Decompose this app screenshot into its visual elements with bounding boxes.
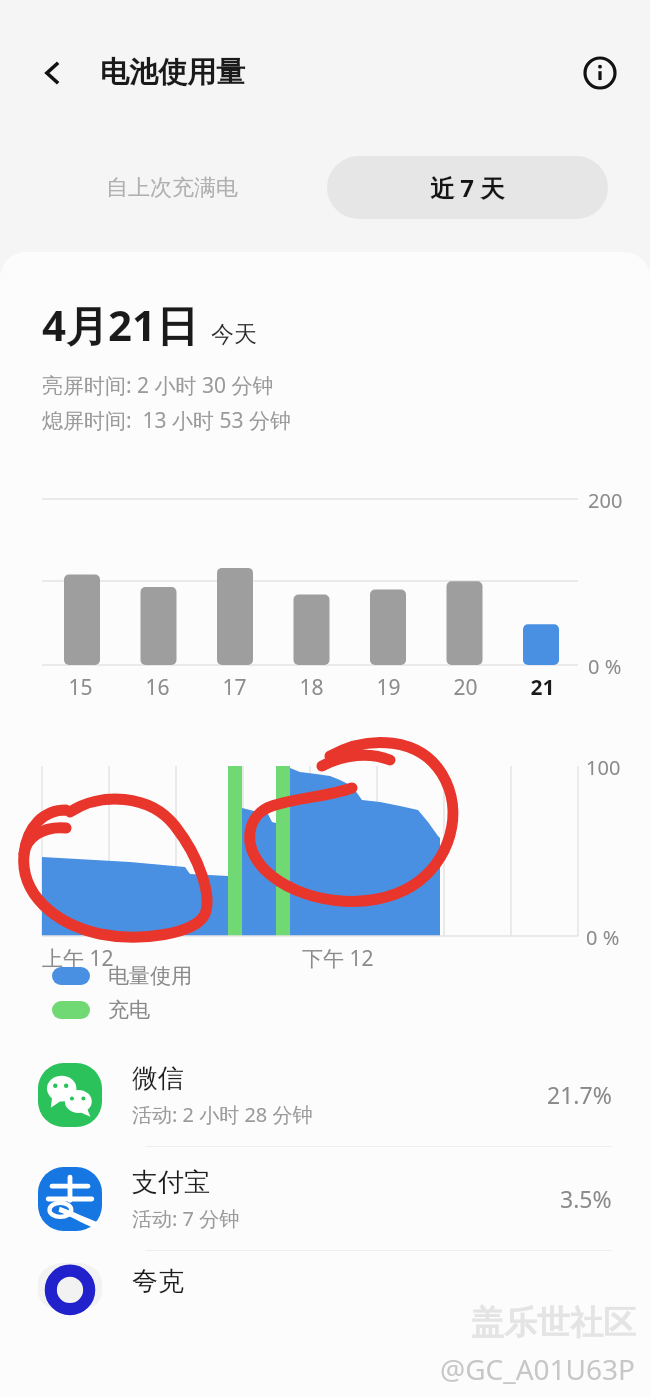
staticText: 夸克 xyxy=(132,1265,184,1298)
staticText: 18 xyxy=(299,673,324,702)
staticText: 支付宝 xyxy=(132,1166,210,1199)
button[interactable]: Back xyxy=(24,45,80,101)
staticText: 近 7 天 xyxy=(430,171,505,204)
staticText: 19 xyxy=(376,673,401,702)
staticText: 3.5% xyxy=(560,1183,612,1214)
staticText: 充电 xyxy=(108,997,150,1023)
staticText: @GC_A01U63P xyxy=(440,1350,636,1388)
staticText: 21 xyxy=(530,673,555,702)
staticText: 电量使用 xyxy=(108,963,192,989)
staticText: 今天 xyxy=(211,320,257,349)
button[interactable]: 夸克 xyxy=(0,1251,650,1311)
staticText: 200 xyxy=(588,487,623,514)
staticText: 4月21日 xyxy=(42,296,199,353)
staticText: 100 xyxy=(586,754,621,781)
staticText: 熄屏时间: 13 小时 53 分钟 xyxy=(42,406,291,435)
staticText: 活动: 7 分钟 xyxy=(132,1205,240,1232)
staticText: 0 % xyxy=(586,924,620,951)
button[interactable]: 自上次充满电 xyxy=(60,157,284,219)
button[interactable]: 微信 xyxy=(0,1043,650,1146)
staticText: 自上次充满电 xyxy=(106,174,238,202)
staticText: 亮屏时间: 2 小时 30 分钟 xyxy=(42,371,274,400)
staticText: 盖乐世社区 xyxy=(471,1302,636,1344)
staticText: 活动: 2 小时 28 分钟 xyxy=(132,1101,313,1128)
staticText: 21.7% xyxy=(547,1079,612,1110)
staticText: 下午 12 xyxy=(302,944,374,973)
staticText: 上午 12 xyxy=(42,944,114,973)
staticText: 0 % xyxy=(588,653,622,680)
staticText: 微信 xyxy=(132,1062,184,1095)
staticText: 20 xyxy=(453,673,478,702)
staticText: 电池使用量 xyxy=(100,54,245,91)
staticText: 17 xyxy=(222,673,247,702)
button[interactable]: 支付宝 xyxy=(0,1147,650,1250)
staticText: 16 xyxy=(145,673,170,702)
button[interactable]: Information xyxy=(572,45,628,101)
staticText: 15 xyxy=(68,673,93,702)
button[interactable]: 近 7 天 xyxy=(327,156,608,219)
